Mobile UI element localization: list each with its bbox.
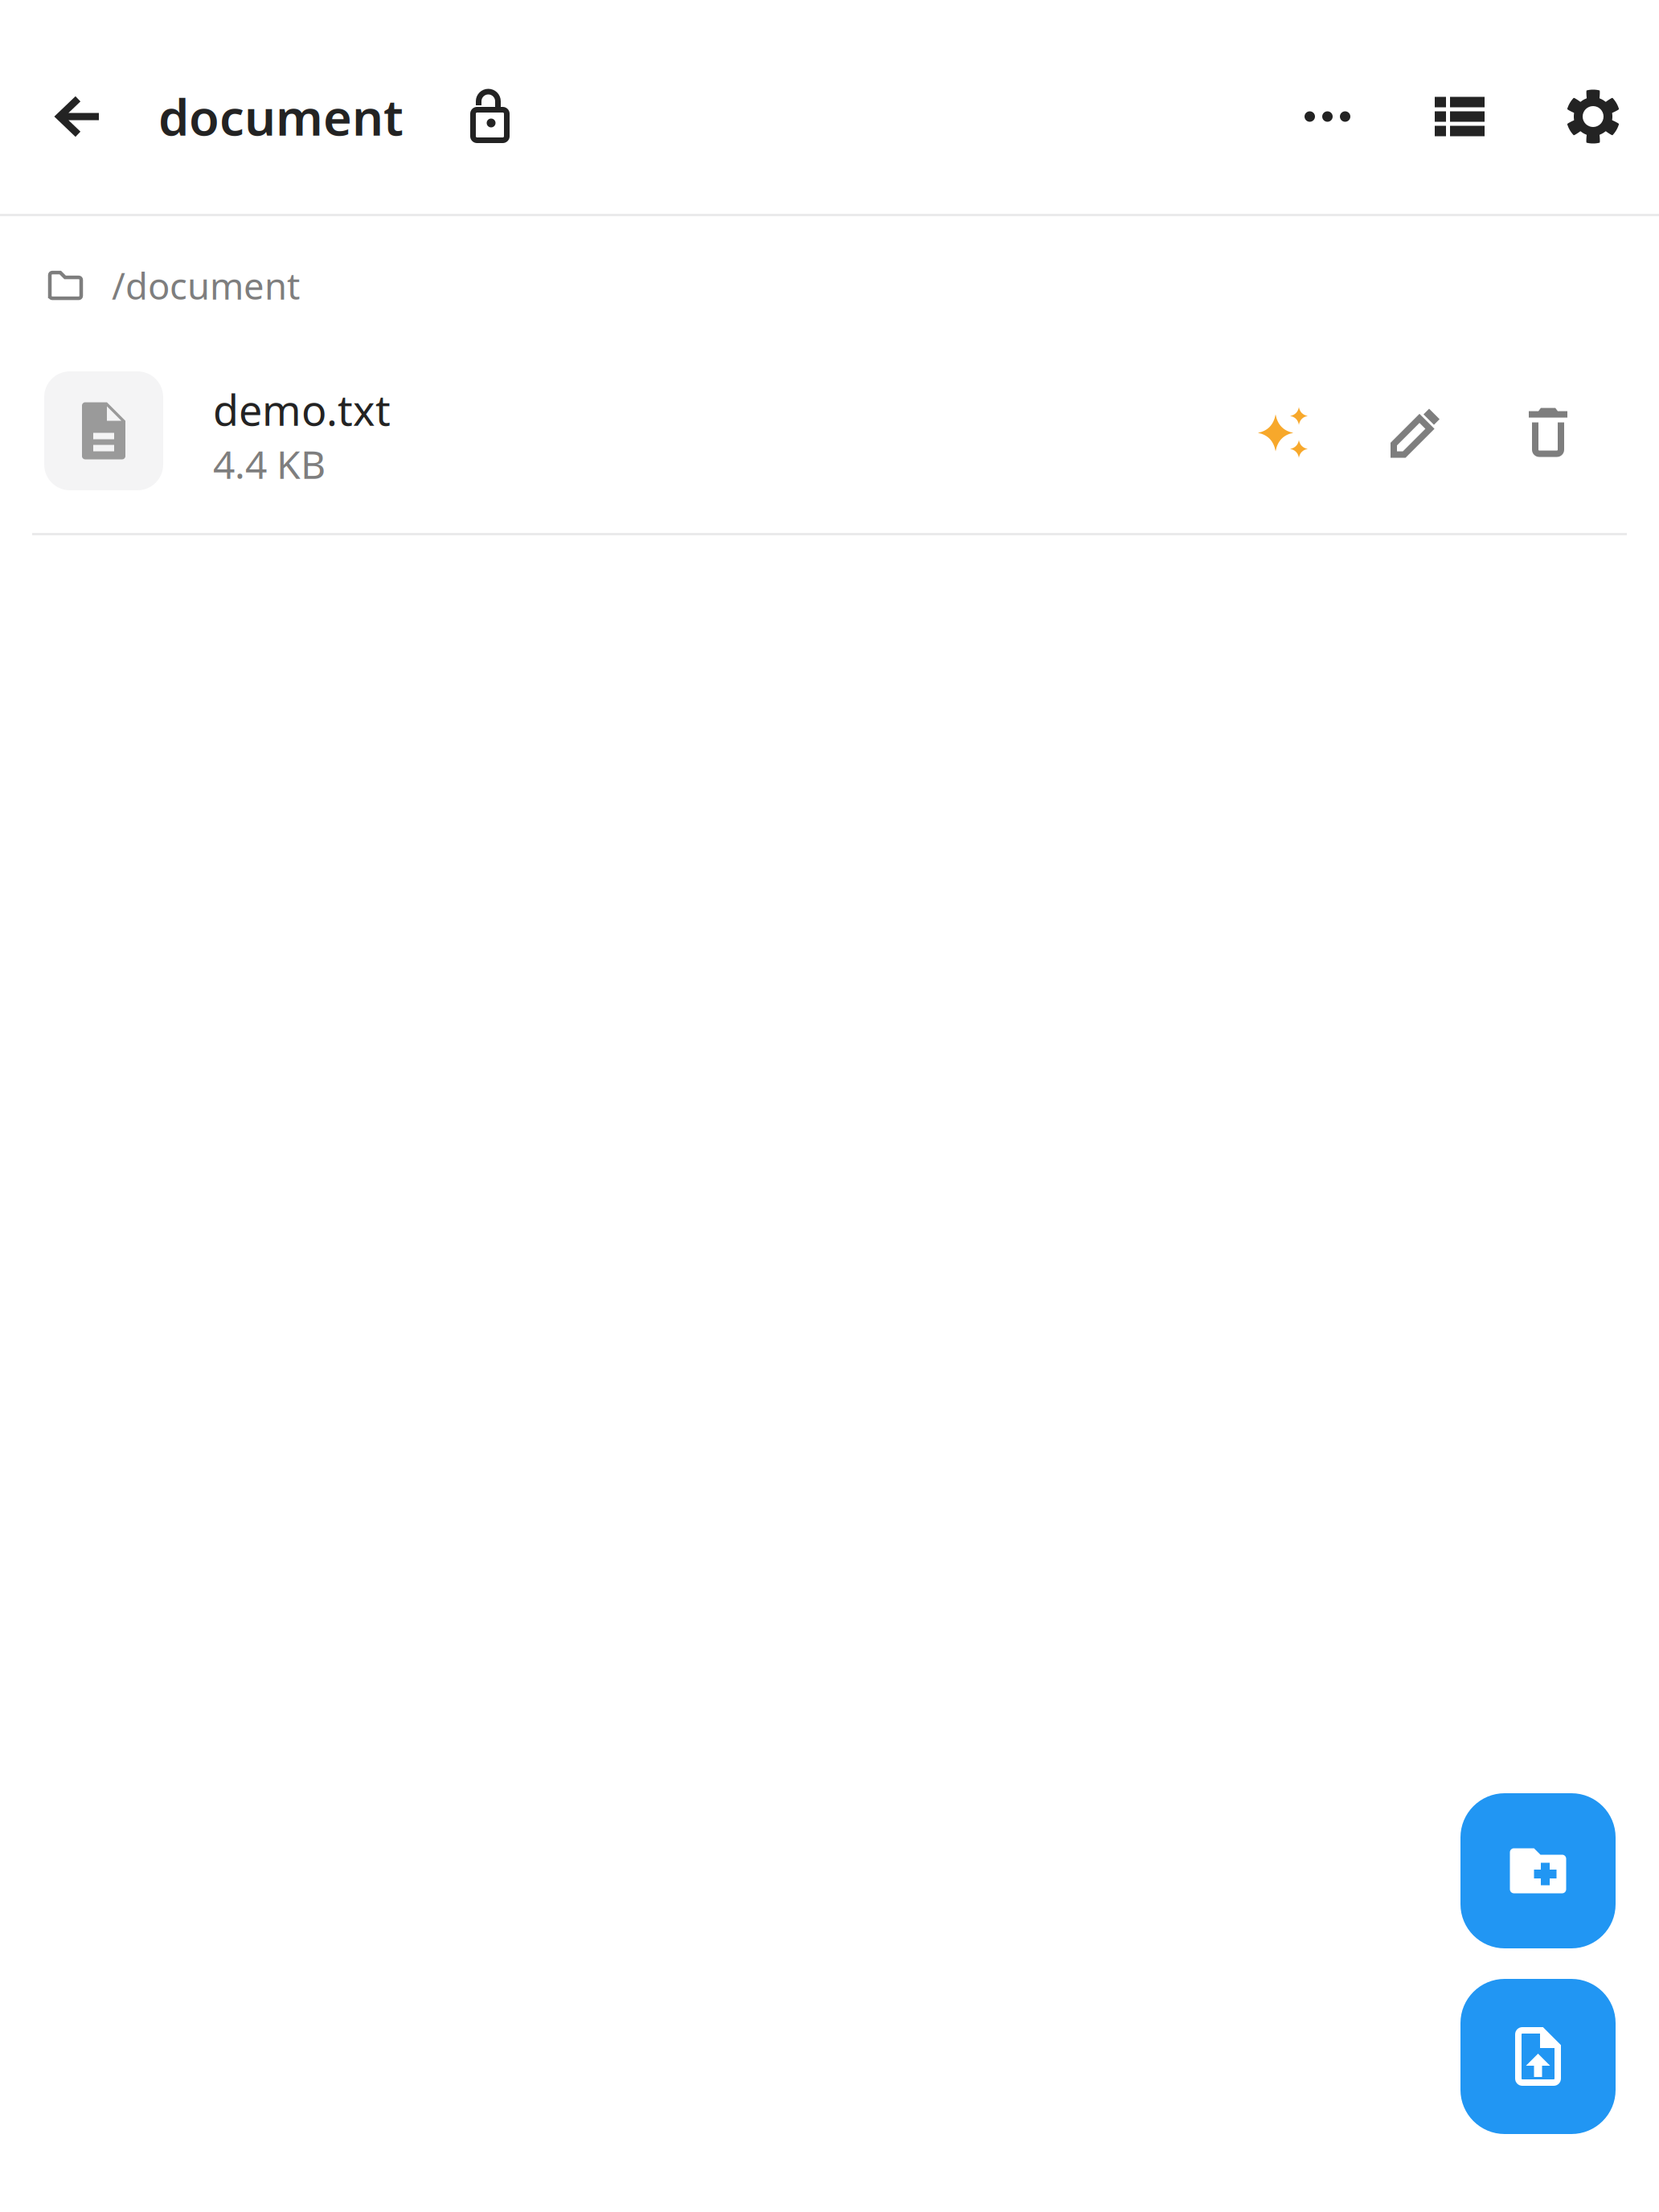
staticText: document <box>158 84 403 149</box>
button[interactable]: New folder <box>1460 1793 1616 1948</box>
button[interactable]: demo.txt <box>0 341 1659 533</box>
staticText: 4.4 KB <box>213 438 326 489</box>
button[interactable]: Back <box>30 10 129 223</box>
button[interactable]: Unlock <box>409 10 552 223</box>
button[interactable]: View mode <box>1415 10 1547 223</box>
button[interactable]: Rename <box>1371 371 1460 490</box>
button[interactable]: AI actions <box>1239 371 1327 490</box>
button[interactable]: More <box>1243 10 1415 223</box>
button[interactable]: Upload file <box>1460 1979 1616 2134</box>
button[interactable]: Delete <box>1504 371 1592 490</box>
button[interactable]: Settings <box>1547 10 1639 223</box>
staticText: /document <box>112 261 300 310</box>
button[interactable]: /document <box>0 216 1659 341</box>
staticText: demo.txt <box>213 382 391 437</box>
